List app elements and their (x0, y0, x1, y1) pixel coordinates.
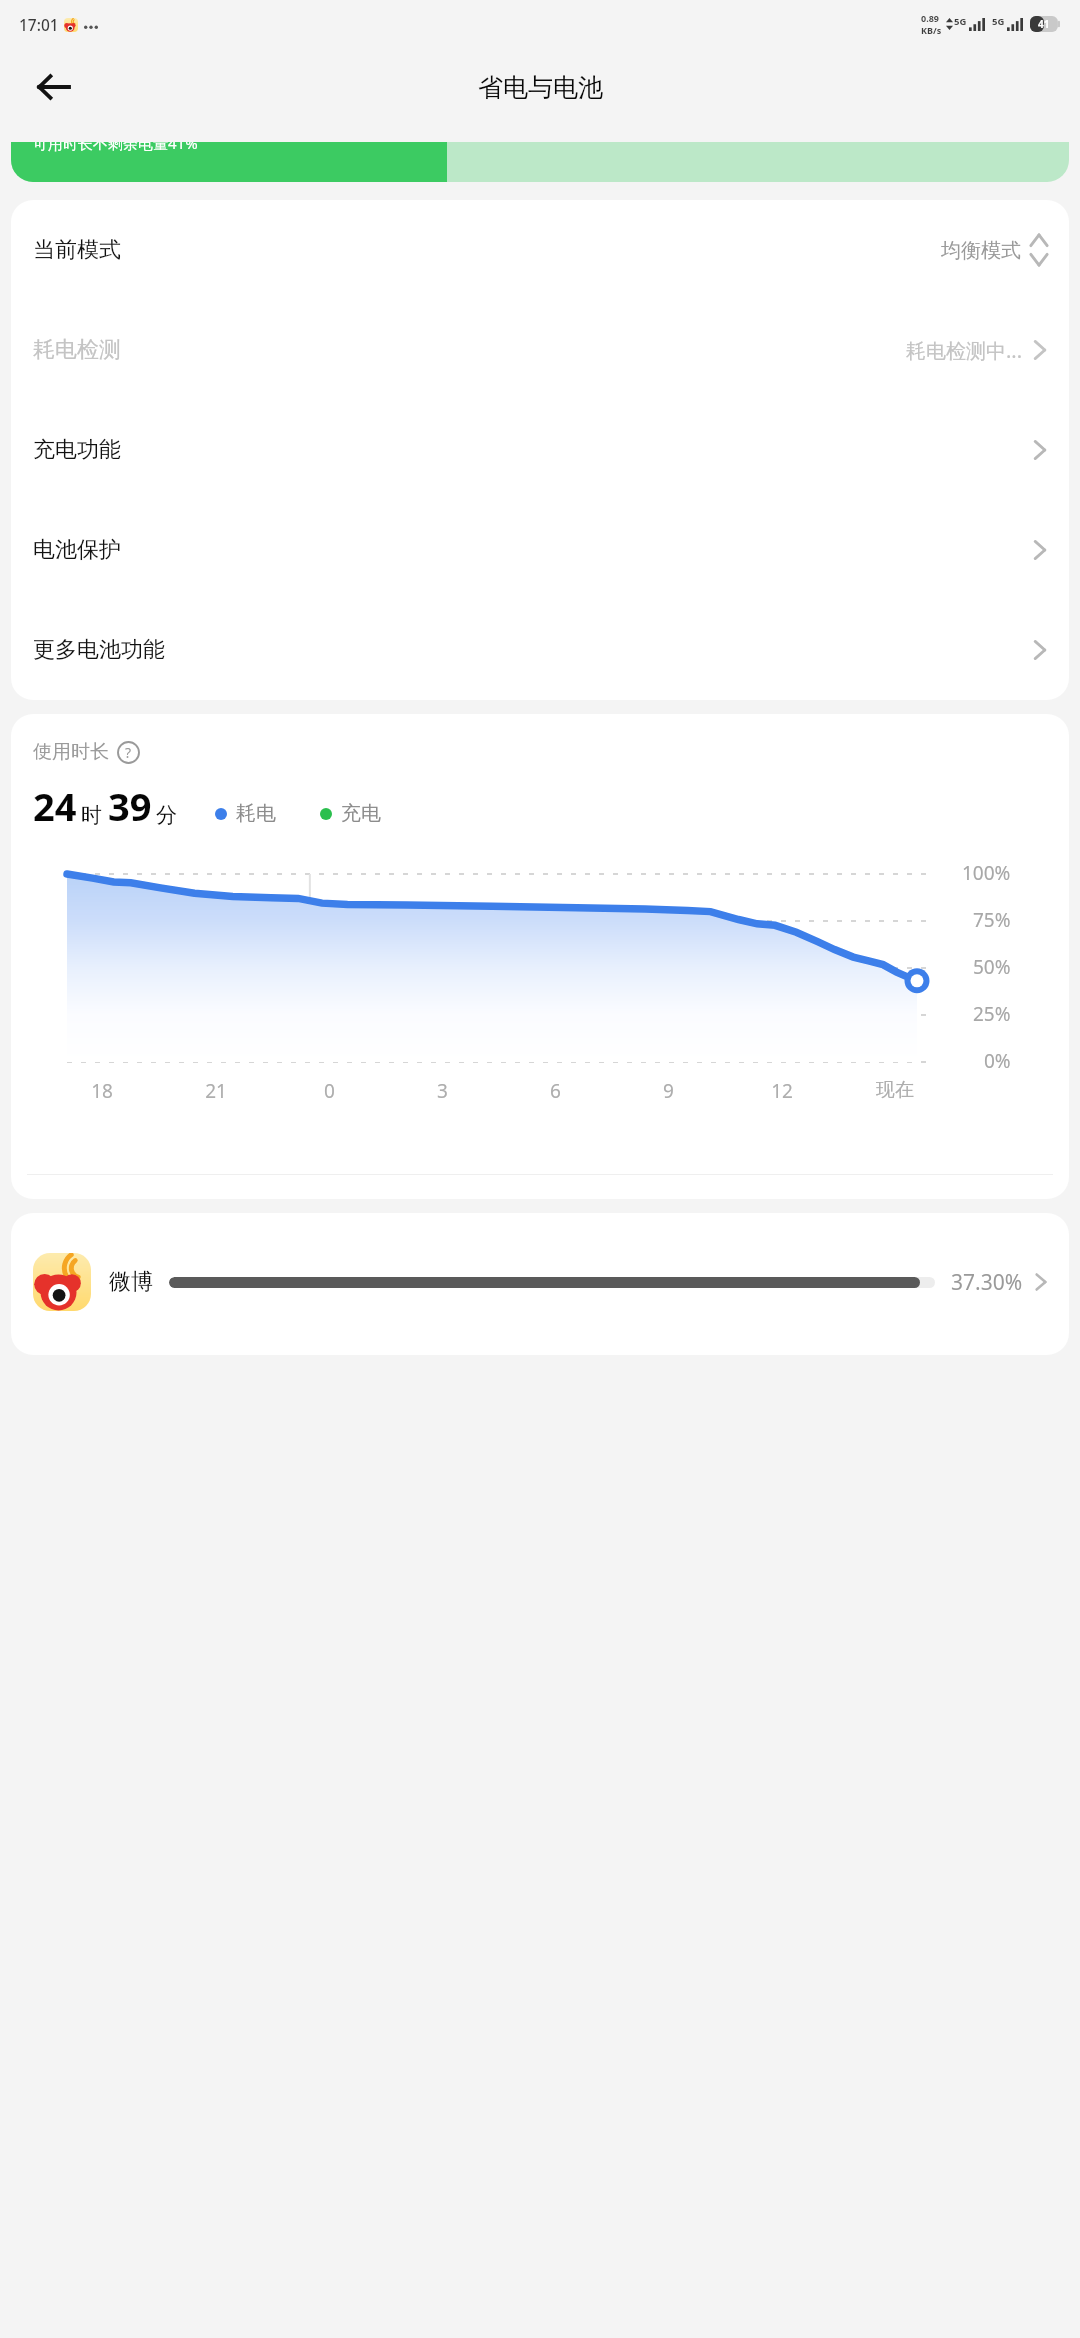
staticText: 3 (437, 1078, 448, 1104)
staticText: 当前模式 (33, 236, 121, 264)
staticText: 耗电检测 (33, 336, 121, 364)
staticText: KB/s (921, 24, 942, 36)
staticText: 充电功能 (33, 436, 121, 464)
staticText: 24 (33, 780, 77, 832)
staticText: 21 (205, 1078, 227, 1104)
staticText: 电池保护 (33, 536, 121, 564)
staticText: 25% (973, 1001, 1011, 1027)
staticText: 时 (81, 802, 102, 828)
staticText: 41 (1038, 17, 1050, 31)
staticText: 5G (992, 15, 1005, 28)
staticText: 100% (962, 860, 1011, 886)
staticText: 均衡模式 (941, 238, 1021, 263)
staticText: 75% (973, 907, 1011, 933)
staticText: 分 (156, 802, 177, 828)
staticText: 0 (324, 1078, 335, 1104)
button[interactable]: 当前模式 (11, 200, 1069, 300)
staticText: 6 (550, 1078, 561, 1104)
staticText: 18 (91, 1078, 113, 1104)
staticText: 可用时长不剩余电量41% (33, 142, 198, 153)
button[interactable]: 使用时长 (33, 740, 140, 764)
staticText: 12 (771, 1078, 793, 1104)
staticText: 使用时长 (33, 740, 109, 764)
button[interactable]: 耗电检测 (11, 300, 1069, 400)
staticText: 省电与电池 (478, 72, 603, 103)
staticText: 17:01 (19, 14, 59, 35)
staticText: 0% (984, 1048, 1011, 1074)
staticText: 更多电池功能 (33, 636, 165, 664)
staticText: 37.30% (951, 1268, 1023, 1297)
staticText: 5G (954, 15, 967, 28)
staticText: 50% (973, 954, 1011, 980)
staticText: 9 (663, 1078, 674, 1104)
staticText: 充电 (341, 801, 381, 826)
staticText: 耗电检测中... (906, 337, 1023, 364)
staticText: 耗电 (236, 801, 276, 826)
button[interactable]: 更多电池功能 (11, 600, 1069, 700)
staticText: 39 (108, 780, 152, 832)
button[interactable]: 充电功能 (11, 400, 1069, 500)
button[interactable]: 电池保护 (11, 500, 1069, 600)
staticText: 微博 (109, 1268, 153, 1296)
button[interactable]: 微博 (11, 1253, 1069, 1311)
button[interactable]: 可用时长不剩余电量41% (11, 142, 1069, 182)
staticText: 现在 (876, 1078, 914, 1102)
staticText: ? (125, 743, 132, 762)
button[interactable]: Back (26, 60, 80, 114)
staticText: 0.89 (921, 12, 939, 24)
